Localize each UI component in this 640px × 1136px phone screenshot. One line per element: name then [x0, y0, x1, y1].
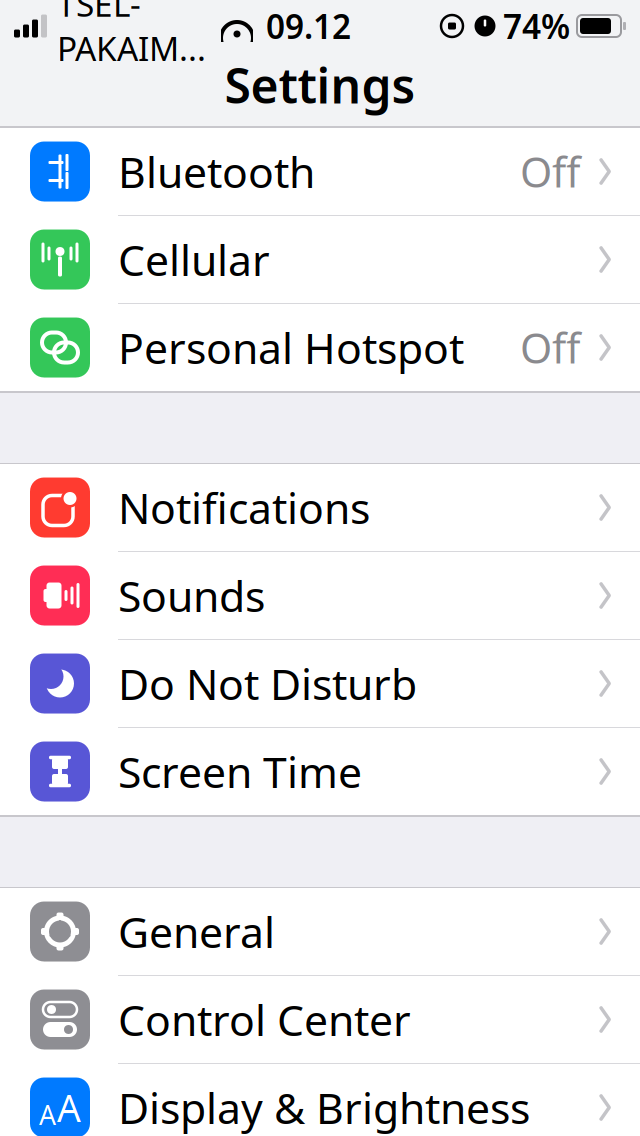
staticText: Off: [520, 320, 580, 375]
button[interactable]: Screen Time: [0, 728, 640, 816]
staticText: 09.12: [266, 4, 351, 48]
staticText: Personal Hotspot: [118, 319, 464, 376]
staticText: General: [118, 903, 275, 960]
staticText: Sounds: [118, 567, 265, 624]
staticText: A: [39, 1097, 56, 1132]
button[interactable]: Bluetooth: [0, 128, 640, 216]
staticText: Screen Time: [118, 743, 362, 800]
staticText: Cellular: [118, 231, 270, 288]
staticText: TSEL-PAKAIM...: [57, 0, 206, 70]
staticText: Bluetooth: [118, 143, 315, 200]
button[interactable]: A: [0, 1064, 640, 1136]
staticText: A: [57, 1083, 81, 1132]
staticText: 74%: [503, 4, 570, 48]
staticText: Do Not Disturb: [118, 655, 417, 712]
staticText: Display & Brightness: [118, 1079, 530, 1136]
button[interactable]: Do Not Disturb: [0, 640, 640, 728]
button[interactable]: General: [0, 888, 640, 976]
button[interactable]: Control Center: [0, 976, 640, 1064]
button[interactable]: Cellular: [0, 216, 640, 304]
staticText: Settings: [224, 53, 415, 117]
staticText: Notifications: [118, 479, 370, 536]
button[interactable]: Notifications: [0, 464, 640, 552]
staticText: Control Center: [118, 991, 411, 1048]
button[interactable]: Sounds: [0, 552, 640, 640]
staticText: Off: [520, 144, 580, 199]
button[interactable]: Personal Hotspot: [0, 304, 640, 392]
